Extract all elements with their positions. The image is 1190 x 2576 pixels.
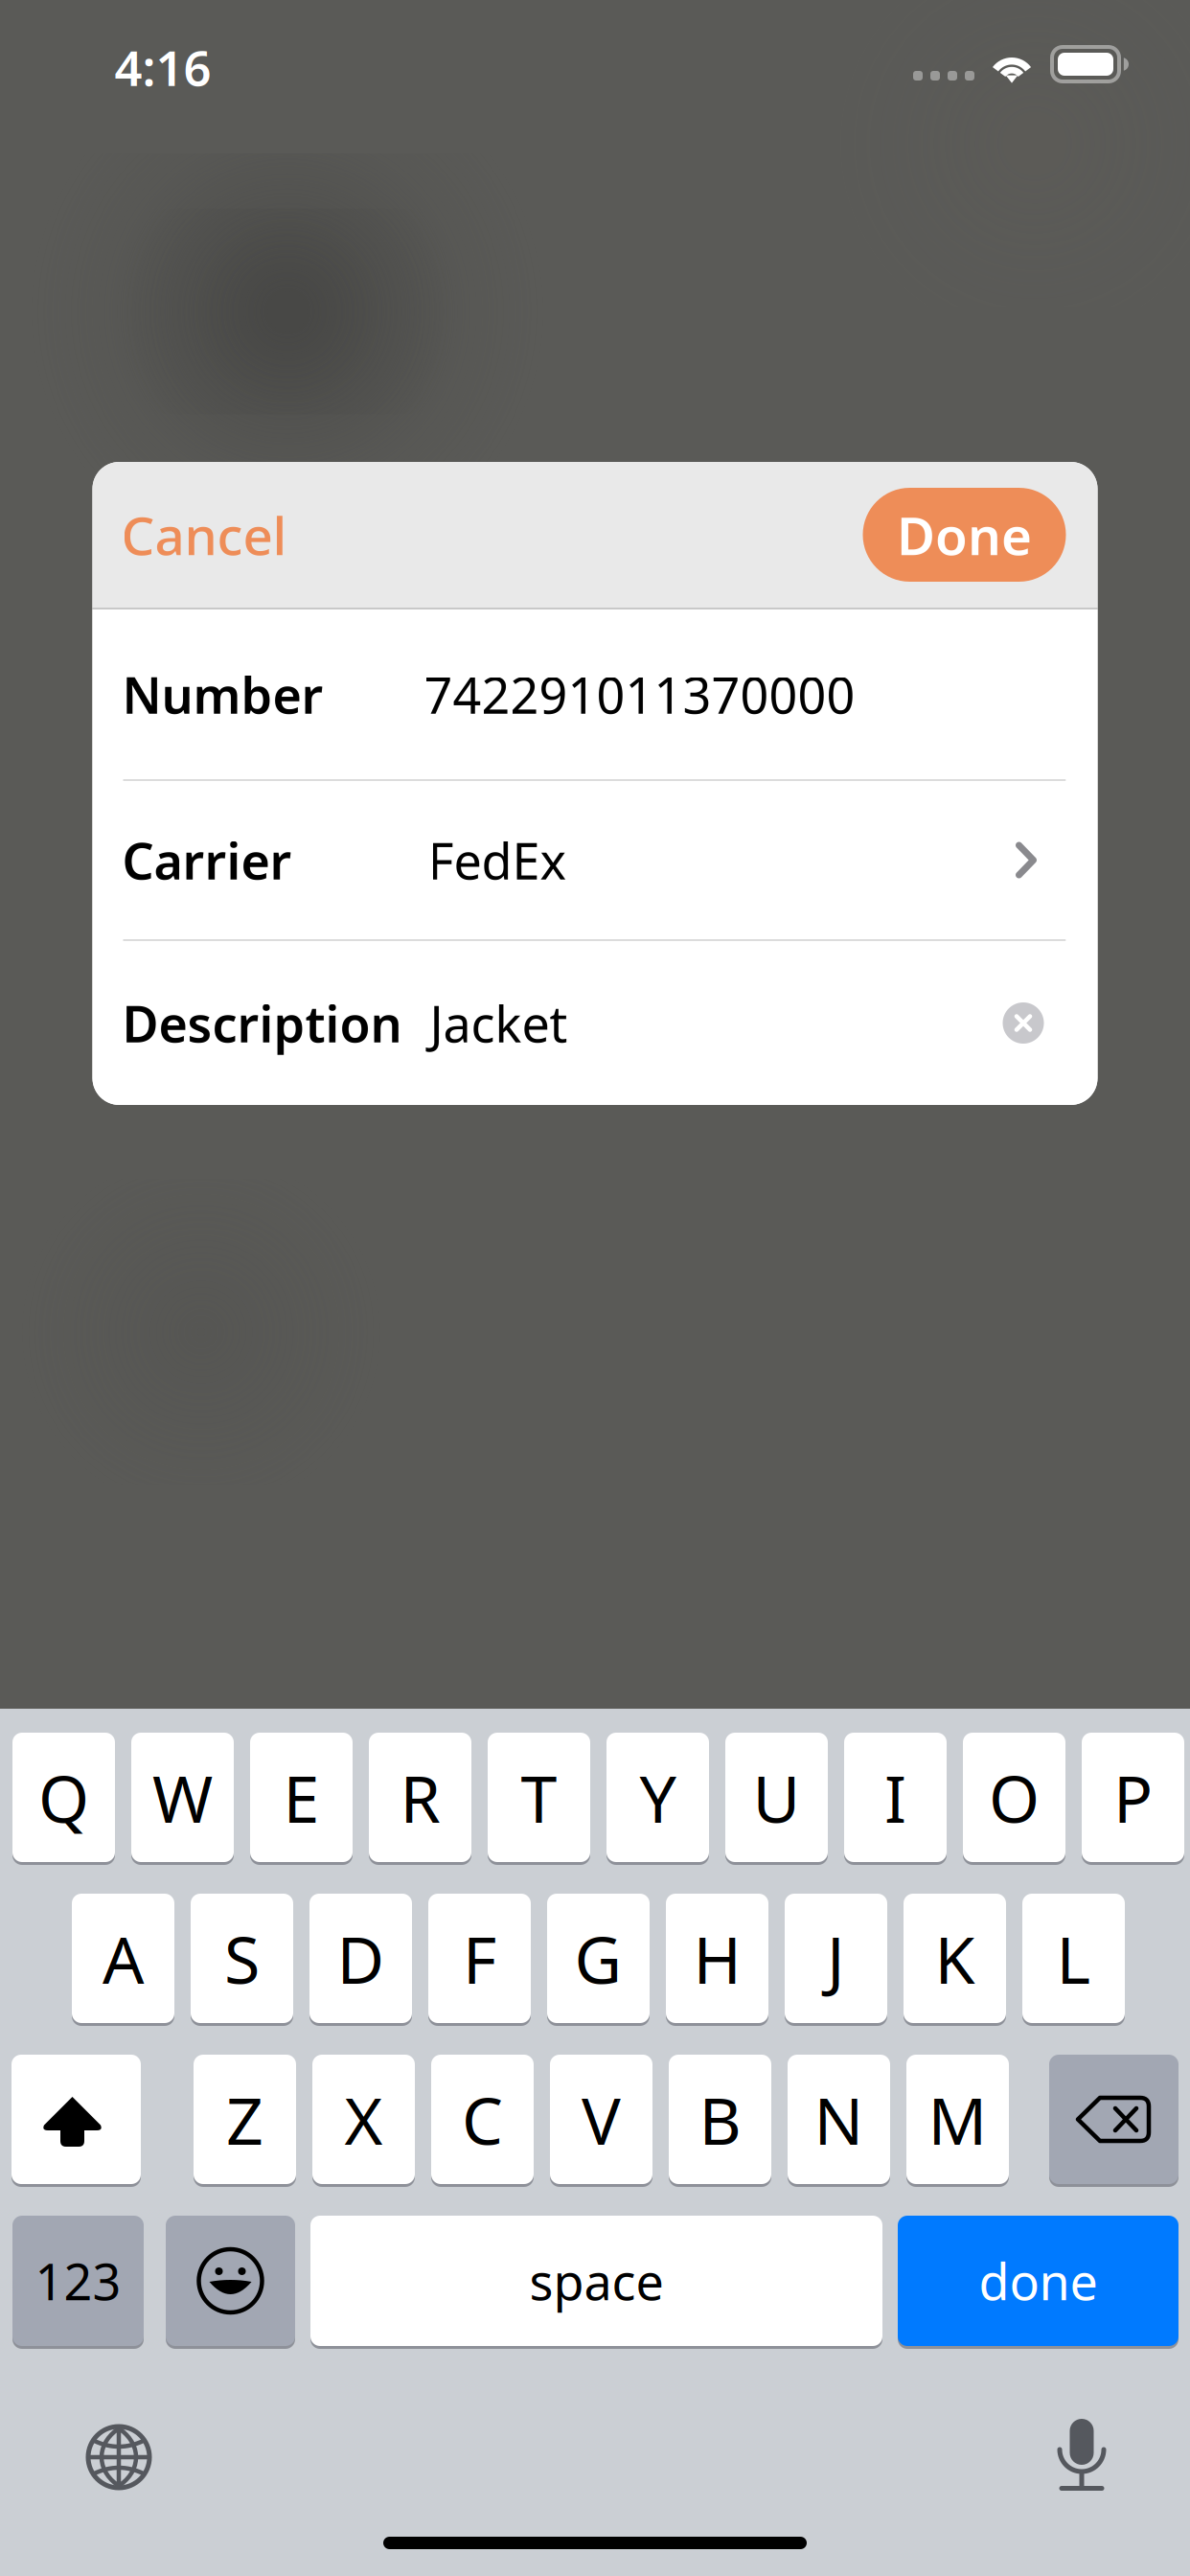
button[interactable]: V — [550, 2055, 652, 2184]
button[interactable]: Y — [606, 1733, 709, 1862]
staticText: Carrier — [122, 827, 292, 893]
staticText: X — [344, 2076, 383, 2163]
staticText: H — [693, 1915, 741, 2002]
button[interactable]: Z — [194, 2055, 296, 2184]
staticText: FedEx — [428, 827, 567, 893]
staticText: K — [935, 1915, 975, 2002]
staticText: W — [152, 1754, 213, 1841]
staticText: B — [699, 2076, 741, 2163]
staticText: D — [337, 1915, 385, 2002]
button[interactable]: Number — [92, 609, 1098, 779]
button[interactable]: O — [963, 1733, 1065, 1862]
button[interactable]: Done — [863, 488, 1098, 582]
staticText: T — [521, 1754, 557, 1841]
staticText: Cancel — [121, 500, 287, 570]
button[interactable]: Q — [12, 1733, 115, 1862]
button[interactable]: I — [844, 1733, 947, 1862]
button[interactable]: F — [428, 1894, 531, 2023]
staticText: G — [574, 1915, 622, 2002]
button[interactable]: D — [309, 1894, 412, 2023]
staticText: P — [1113, 1754, 1153, 1841]
button[interactable]: Dictate — [1057, 2417, 1107, 2497]
button[interactable]: A — [72, 1894, 174, 2023]
button[interactable]: S — [191, 1894, 293, 2023]
button[interactable]: P — [1082, 1733, 1184, 1862]
staticText: R — [400, 1754, 440, 1841]
staticText: L — [1056, 1915, 1091, 2002]
button[interactable]: R — [369, 1733, 471, 1862]
button[interactable]: E — [250, 1733, 353, 1862]
button[interactable]: done — [898, 2216, 1179, 2346]
staticText: V — [582, 2076, 621, 2163]
staticText: Z — [226, 2076, 263, 2163]
button[interactable]: N — [788, 2055, 890, 2184]
staticText: A — [103, 1915, 144, 2002]
button[interactable]: Emoji — [166, 2216, 295, 2346]
staticText: Jacket — [430, 990, 568, 1056]
staticText: 742291011370000 — [424, 661, 855, 727]
staticText: F — [463, 1915, 496, 2002]
button[interactable]: J — [785, 1894, 887, 2023]
staticText: 4:16 — [114, 35, 211, 99]
button[interactable]: M — [906, 2055, 1009, 2184]
button[interactable]: C — [431, 2055, 534, 2184]
button[interactable]: T — [488, 1733, 590, 1862]
button[interactable]: G — [547, 1894, 650, 2023]
button[interactable]: Shift — [11, 2055, 141, 2184]
button[interactable]: K — [904, 1894, 1006, 2023]
staticText: Done — [897, 500, 1032, 570]
button[interactable]: Description — [92, 941, 1098, 1105]
button[interactable]: Delete — [1049, 2055, 1179, 2184]
staticText: Q — [38, 1754, 89, 1841]
button[interactable]: space — [310, 2216, 882, 2346]
button[interactable]: U — [725, 1733, 828, 1862]
staticText: U — [753, 1754, 801, 1841]
button[interactable]: Carrier — [92, 781, 1098, 939]
staticText: 123 — [35, 2248, 121, 2314]
button[interactable]: 123 — [12, 2216, 144, 2346]
staticText: done — [979, 2248, 1098, 2314]
button[interactable]: X — [312, 2055, 415, 2184]
staticText: E — [283, 1754, 320, 1841]
staticText: Y — [640, 1754, 676, 1841]
button[interactable]: W — [131, 1733, 234, 1862]
staticText: M — [928, 2076, 987, 2163]
button[interactable]: L — [1022, 1894, 1125, 2023]
staticText: J — [827, 1915, 845, 2002]
staticText: O — [989, 1754, 1040, 1841]
button[interactable]: Next keyboard — [88, 2426, 149, 2488]
button[interactable]: B — [669, 2055, 771, 2184]
staticText: I — [884, 1754, 906, 1841]
staticText: space — [529, 2248, 664, 2314]
staticText: S — [224, 1915, 260, 2002]
staticText: Number — [122, 661, 323, 727]
staticText: Description — [122, 990, 402, 1056]
staticText: C — [462, 2076, 503, 2163]
button[interactable]: Cancel — [92, 462, 351, 608]
button[interactable]: H — [666, 1894, 768, 2023]
staticText: N — [814, 2076, 864, 2163]
